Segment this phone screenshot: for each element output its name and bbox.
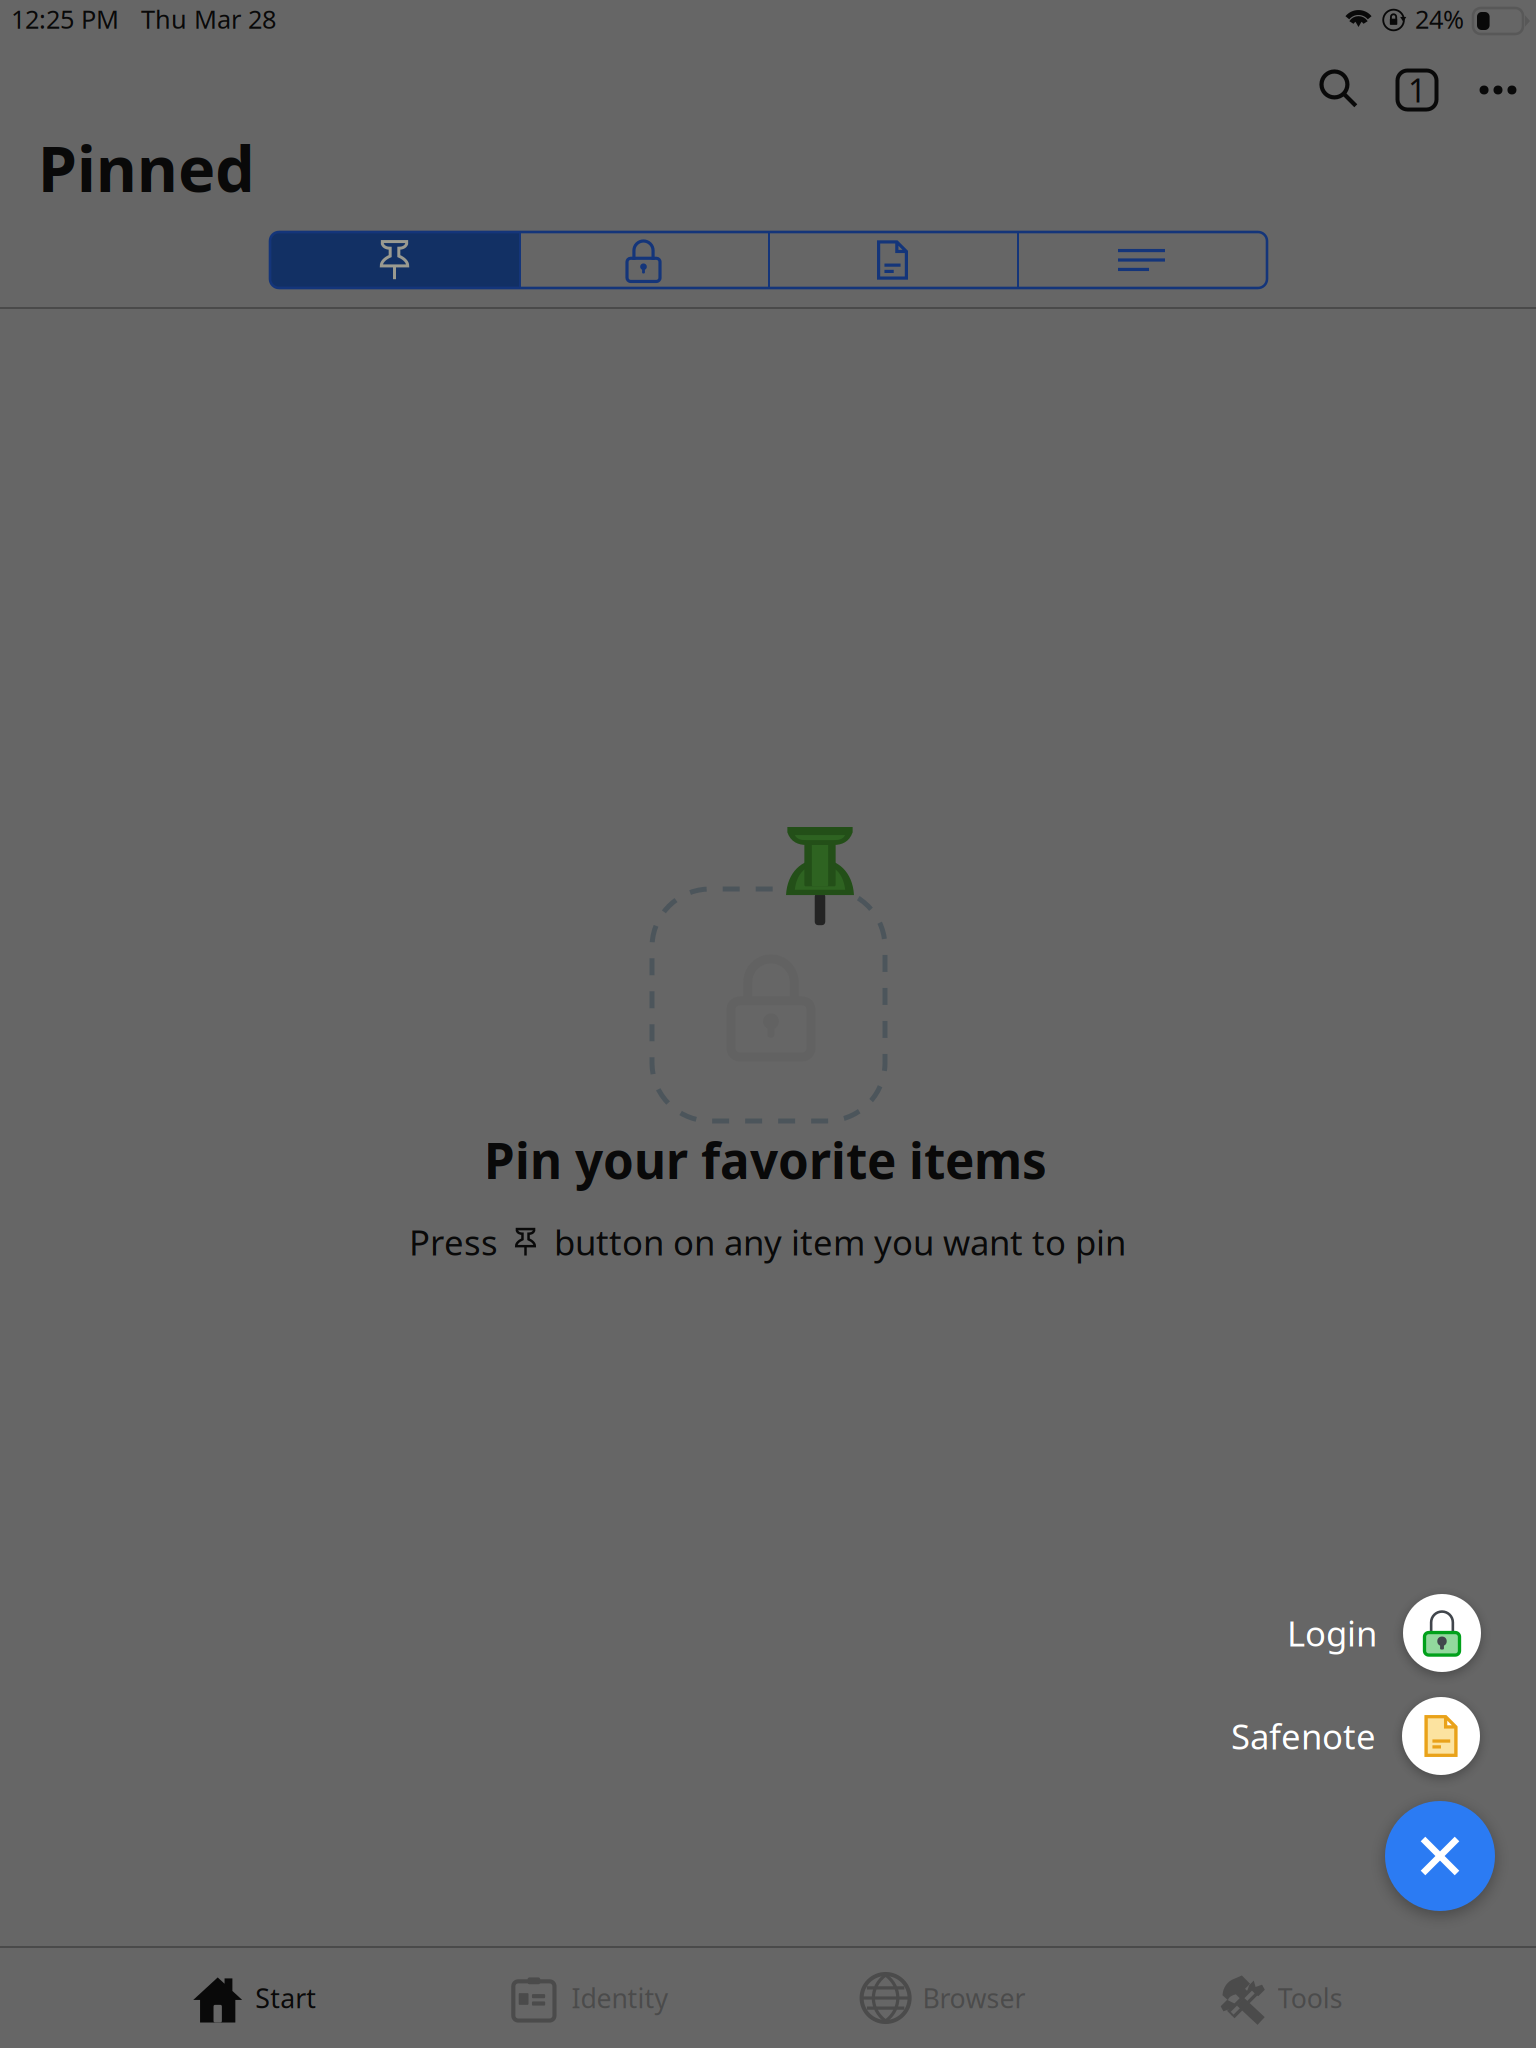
button[interactable]: Safenotes: [768, 232, 1017, 288]
staticText: Browser: [923, 1980, 1026, 2016]
button[interactable]: Search: [1301, 51, 1377, 127]
button[interactable]: Start: [193, 1948, 316, 2048]
button[interactable]: Login: [1287, 1594, 1481, 1672]
button[interactable]: Pinned: [270, 232, 519, 288]
staticText: 1: [1408, 69, 1426, 111]
staticText: 24%: [1415, 2, 1464, 36]
staticText: Thu Mar 28: [141, 2, 276, 36]
staticText: Login: [1287, 1610, 1377, 1656]
staticText: Tools: [1278, 1980, 1343, 2016]
staticText: button on any item you want to pin: [554, 1219, 1126, 1265]
staticText: Safenote: [1231, 1713, 1376, 1759]
staticText: Identity: [571, 1980, 668, 2016]
staticText: Press: [409, 1219, 498, 1265]
button[interactable]: Open tabs: 1: [1379, 52, 1455, 128]
button[interactable]: Tools: [1219, 1948, 1343, 2048]
button[interactable]: Identity: [509, 1948, 668, 2048]
button[interactable]: Browser: [862, 1948, 1026, 2048]
button[interactable]: All items: [1017, 232, 1266, 288]
staticText: 12:25 PM: [11, 2, 119, 36]
staticText: Start: [255, 1980, 316, 2016]
staticText: Pinned: [38, 126, 255, 209]
staticText: Pin your favorite items: [484, 1127, 1047, 1192]
button[interactable]: Close add menu: [1385, 1801, 1495, 1911]
button[interactable]: More options: [1460, 52, 1536, 128]
button[interactable]: Logins: [519, 232, 768, 288]
button[interactable]: Safenote: [1231, 1697, 1480, 1775]
